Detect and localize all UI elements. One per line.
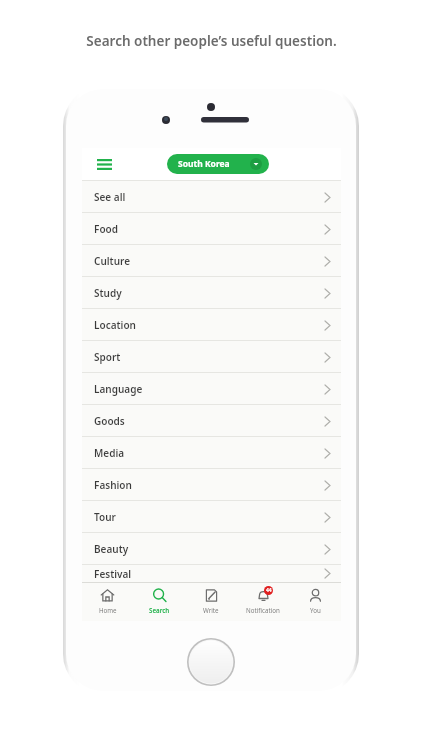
- staticText: Notification: [246, 606, 280, 614]
- staticText: Study: [94, 286, 122, 300]
- button[interactable]: Culture: [82, 245, 341, 277]
- staticText: Food: [94, 222, 118, 236]
- button[interactable]: Write: [185, 583, 237, 621]
- staticText: Home: [99, 606, 117, 614]
- staticText: South Korea: [178, 158, 230, 170]
- staticText: Search other people’s useful question.: [86, 32, 337, 50]
- staticText: Search: [149, 606, 170, 614]
- button[interactable]: 44: [237, 583, 289, 621]
- button[interactable]: Study: [82, 277, 341, 309]
- button[interactable]: Food: [82, 213, 341, 245]
- button[interactable]: Home: [82, 583, 133, 621]
- button[interactable]: Location: [82, 309, 341, 341]
- staticText: Beauty: [94, 542, 129, 556]
- button[interactable]: Menu: [88, 148, 120, 180]
- button[interactable]: Goods: [82, 405, 341, 437]
- button[interactable]: You: [289, 583, 341, 621]
- staticText: Sport: [94, 350, 121, 364]
- staticText: Location: [94, 318, 136, 332]
- staticText: Goods: [94, 414, 125, 428]
- staticText: Fashion: [94, 478, 132, 492]
- button[interactable]: Sport: [82, 341, 341, 373]
- staticText: See all: [94, 190, 126, 204]
- staticText: Tour: [94, 510, 116, 524]
- button[interactable]: Fashion: [82, 469, 341, 501]
- staticText: 44: [266, 587, 272, 594]
- button[interactable]: Media: [82, 437, 341, 469]
- button[interactable]: See all: [82, 181, 341, 213]
- staticText: Write: [203, 606, 219, 614]
- staticText: Language: [94, 382, 143, 396]
- staticText: Media: [94, 446, 125, 460]
- button[interactable]: Tour: [82, 501, 341, 533]
- staticText: You: [310, 606, 321, 614]
- button[interactable]: Language: [82, 373, 341, 405]
- button[interactable]: Festival: [82, 565, 341, 582]
- button[interactable]: Search: [133, 583, 185, 621]
- staticText: Festival: [94, 567, 132, 581]
- button[interactable]: Beauty: [82, 533, 341, 565]
- staticText: Culture: [94, 254, 131, 268]
- button[interactable]: South Korea: [167, 154, 269, 174]
